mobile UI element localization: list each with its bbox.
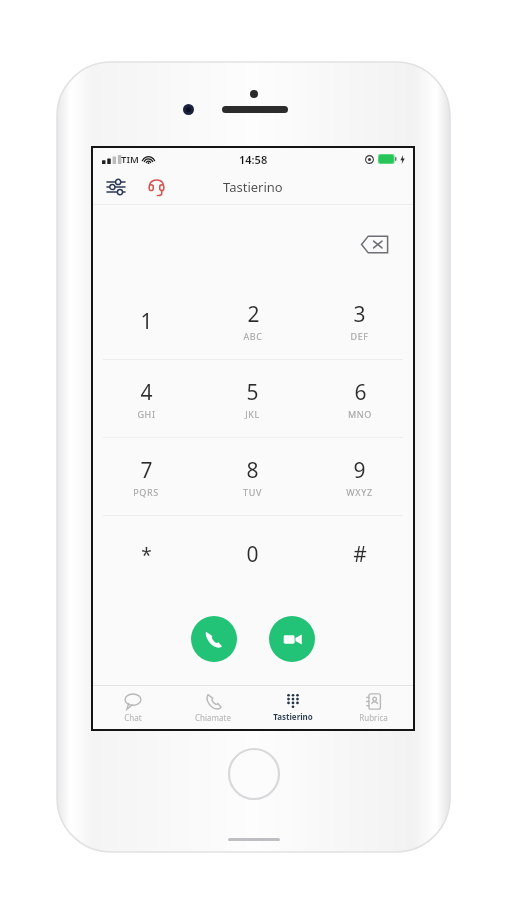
staticText: 1 <box>140 307 153 336</box>
staticText: MNO <box>348 408 372 420</box>
staticText: GHI <box>137 408 156 420</box>
staticText: 4 <box>140 378 153 407</box>
staticText: 2 <box>247 300 260 329</box>
staticText: Chiamate <box>195 712 231 723</box>
staticText: 9 <box>353 456 366 485</box>
button[interactable]: 6 <box>306 360 413 437</box>
button[interactable]: Chiamate <box>173 686 253 729</box>
staticText: DEF <box>350 330 369 342</box>
button[interactable]: # <box>306 516 413 593</box>
staticText: Tastierino <box>273 711 313 722</box>
button[interactable]: 0 <box>199 516 306 593</box>
staticText: TIM <box>121 153 139 166</box>
button[interactable]: Rubrica <box>333 686 413 729</box>
button[interactable]: Chat <box>93 686 173 729</box>
staticText: 3 <box>353 300 366 329</box>
button[interactable]: 3 <box>306 283 413 359</box>
button[interactable]: 8 <box>199 438 306 515</box>
staticText: JKL <box>245 408 260 420</box>
staticText: Chat <box>124 712 142 723</box>
staticText: 8 <box>246 456 259 485</box>
staticText: TUV <box>243 486 262 498</box>
button[interactable]: 7 <box>93 438 199 515</box>
button[interactable]: 1 <box>93 283 199 359</box>
button[interactable]: Video call <box>269 616 315 662</box>
button[interactable]: Voice call <box>191 616 237 662</box>
button[interactable]: Support headset <box>141 172 171 202</box>
button[interactable]: 4 <box>93 360 199 437</box>
staticText: 14:58 <box>239 152 268 167</box>
staticText: WXYZ <box>346 486 373 498</box>
staticText: * <box>141 542 152 568</box>
button[interactable]: 2 <box>199 283 306 359</box>
staticText: 7 <box>140 456 153 485</box>
staticText: 0 <box>246 540 259 569</box>
staticText: # <box>353 540 367 569</box>
staticText: Tastierino <box>223 178 283 196</box>
button[interactable]: 9 <box>306 438 413 515</box>
staticText: ABC <box>243 330 263 342</box>
staticText: Rubrica <box>359 712 388 723</box>
staticText: 5 <box>246 378 259 407</box>
button[interactable]: * <box>93 516 199 593</box>
button[interactable]: Tastierino <box>253 686 333 729</box>
button[interactable]: 5 <box>199 360 306 437</box>
staticText: 6 <box>354 378 367 407</box>
button[interactable]: Settings <box>101 172 131 202</box>
staticText: PQRS <box>133 486 159 498</box>
button[interactable]: Backspace <box>355 228 395 260</box>
